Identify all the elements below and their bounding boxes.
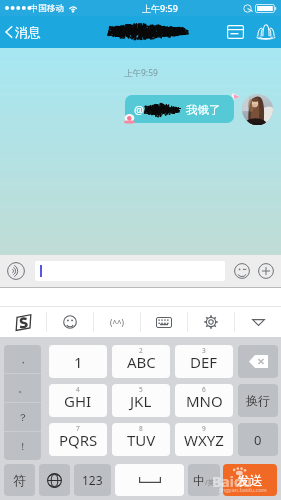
staticText: ，: [18, 353, 28, 366]
button[interactable]: 换行: [238, 384, 278, 417]
staticText: 0: [254, 431, 262, 449]
staticText: 6: [202, 385, 206, 394]
staticText: 消息: [15, 24, 41, 40]
staticText: (^^): [110, 317, 124, 328]
button[interactable]: 6: [175, 384, 233, 417]
button[interactable]: 搜狗输入法: [0, 307, 46, 337]
staticText: 4: [76, 385, 80, 394]
staticText: 3: [202, 346, 206, 355]
button[interactable]: 键盘: [141, 307, 187, 337]
button[interactable]: 5: [112, 384, 170, 417]
staticText: 9: [202, 424, 206, 433]
staticText: 123: [82, 472, 103, 488]
button[interactable]: 群成员: [251, 19, 280, 45]
button[interactable]: 0: [238, 423, 278, 456]
button[interactable]: @: [125, 95, 234, 123]
button[interactable]: 语音: [7, 262, 25, 280]
staticText: MNO: [186, 391, 223, 411]
button[interactable]: 群资料卡: [221, 19, 249, 45]
staticText: 发送: [237, 472, 263, 488]
staticText: 上午9:59: [124, 67, 158, 79]
staticText: DEF: [190, 352, 218, 372]
button[interactable]: [35, 261, 225, 281]
button[interactable]: 。: [4, 374, 41, 402]
staticText: GHI: [64, 391, 92, 411]
staticText: 7: [76, 424, 80, 433]
staticText: TUV: [127, 430, 156, 450]
button[interactable]: 7: [49, 423, 107, 456]
button[interactable]: 空格: [115, 464, 184, 496]
button[interactable]: 更多: [258, 263, 274, 279]
button[interactable]: ！: [4, 432, 41, 460]
button[interactable]: ，: [4, 345, 41, 373]
staticText: PQRS: [59, 430, 98, 450]
button[interactable]: 表情: [47, 307, 93, 337]
staticText: WXYZ: [184, 430, 224, 450]
button[interactable]: 8: [112, 423, 170, 456]
staticText: @: [134, 102, 144, 117]
staticText: 。: [18, 382, 28, 395]
staticText: 1: [74, 352, 83, 372]
button[interactable]: ？: [4, 403, 41, 431]
button[interactable]: 表情: [234, 263, 250, 279]
button[interactable]: 123: [74, 464, 111, 496]
staticText: 中国移动: [30, 3, 64, 14]
button[interactable]: 删除: [238, 345, 278, 378]
staticText: 中: [193, 473, 205, 488]
button[interactable]: 收起键盘: [235, 307, 281, 337]
button[interactable]: 中: [188, 464, 220, 496]
button[interactable]: 4: [49, 384, 107, 417]
staticText: JKL: [130, 391, 152, 411]
button[interactable]: 1: [49, 345, 107, 378]
button[interactable]: 切换输入法: [39, 464, 70, 496]
staticText: 上午9:59: [142, 2, 178, 14]
staticText: 换行: [246, 393, 270, 408]
staticText: 5: [139, 385, 143, 394]
staticText: /英: [205, 478, 215, 488]
button[interactable]: 发送: [223, 464, 277, 496]
staticText: jingyan.baidu.com: [219, 486, 267, 493]
button[interactable]: 2: [112, 345, 170, 378]
button[interactable]: 设置: [188, 307, 234, 337]
button[interactable]: 3: [175, 345, 233, 378]
staticText: 2: [139, 346, 143, 355]
staticText: 8: [139, 424, 143, 433]
button[interactable]: 符: [4, 464, 35, 496]
staticText: ？: [18, 411, 28, 424]
staticText: 符: [13, 472, 26, 488]
staticText: Baidu: [212, 472, 252, 491]
button[interactable]: 头像: [242, 94, 273, 125]
button[interactable]: 返回消息: [0, 19, 47, 45]
staticText: ！: [18, 440, 28, 453]
staticText: ABC: [127, 352, 156, 372]
button[interactable]: 颜文字: [94, 307, 140, 337]
button[interactable]: 9: [175, 423, 233, 456]
staticText: 我饿了: [186, 103, 221, 117]
